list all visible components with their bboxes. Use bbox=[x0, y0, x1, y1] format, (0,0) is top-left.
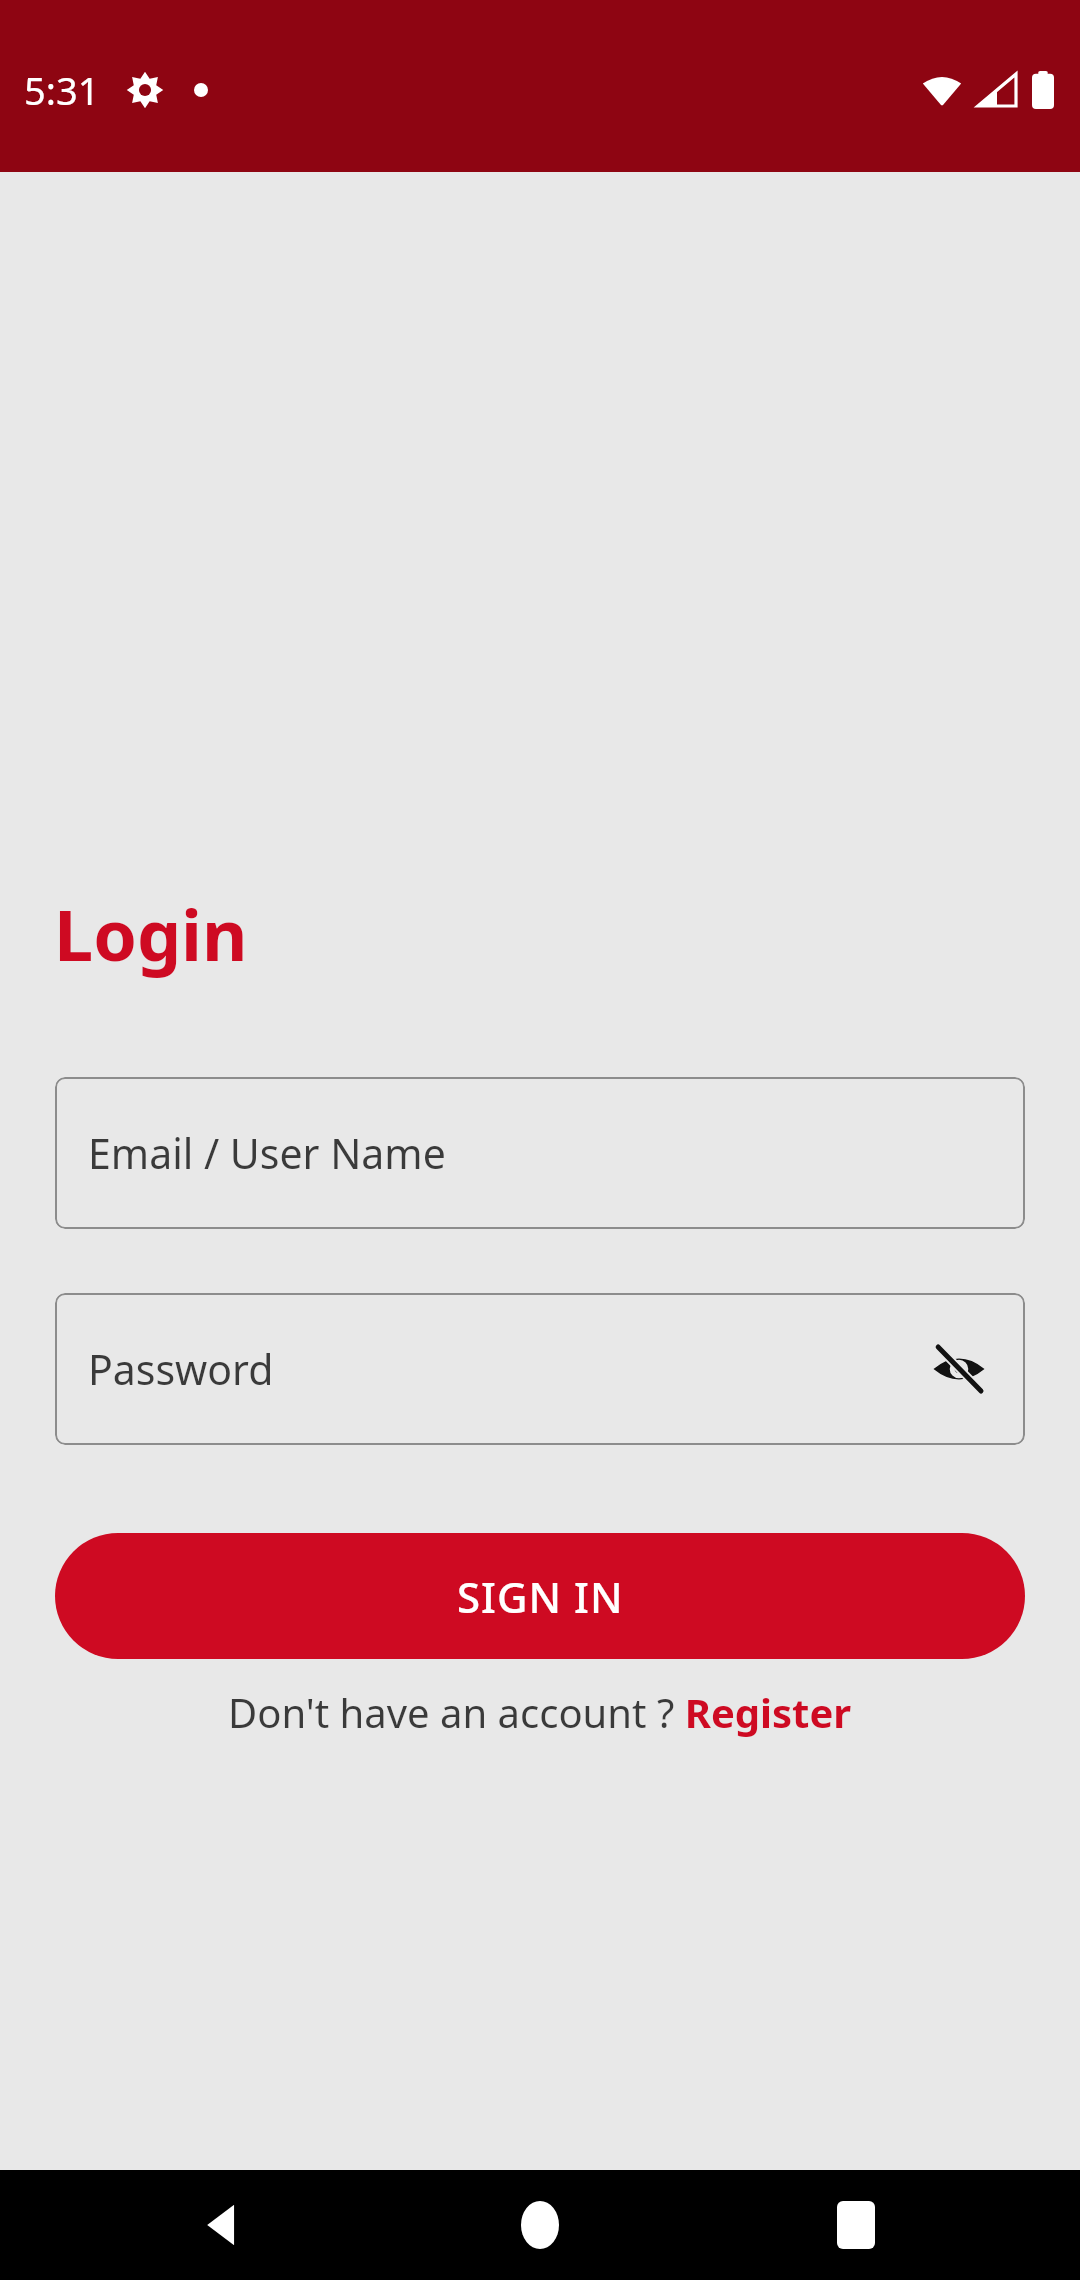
staticText: Password bbox=[88, 1341, 274, 1397]
button[interactable]: Password bbox=[55, 1293, 1025, 1445]
staticText: 5:31 bbox=[24, 64, 100, 116]
button[interactable]: Back bbox=[178, 2179, 270, 2271]
button[interactable]: Toggle password visibility bbox=[919, 1329, 999, 1409]
staticText: SIGN IN bbox=[457, 1568, 624, 1625]
staticText: Login bbox=[54, 886, 248, 981]
button[interactable]: Home bbox=[494, 2179, 586, 2271]
button[interactable]: Email / User Name bbox=[55, 1077, 1025, 1229]
staticText: Email / User Name bbox=[88, 1125, 446, 1181]
button[interactable]: Don't have an account ? Register bbox=[228, 1685, 852, 1739]
button[interactable]: Recent apps bbox=[810, 2179, 902, 2271]
button[interactable]: SIGN IN bbox=[55, 1533, 1025, 1659]
